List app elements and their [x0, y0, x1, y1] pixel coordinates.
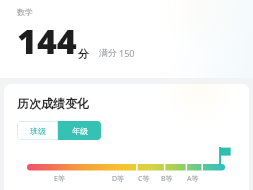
staticText: 历次成绩变化 — [17, 96, 89, 111]
staticText: 年级 — [72, 126, 88, 136]
staticText: 数学 — [17, 7, 33, 17]
staticText: 144 — [17, 18, 77, 64]
staticText: C等 — [138, 174, 150, 184]
button[interactable]: 年级 — [58, 121, 101, 140]
staticText: B等 — [161, 174, 173, 184]
staticText: D等 — [112, 174, 125, 184]
button[interactable]: 班级 — [17, 121, 58, 140]
staticText: E等 — [54, 174, 65, 184]
staticText: A等 — [187, 174, 199, 184]
staticText: 满分 — [99, 47, 117, 58]
staticText: 班级 — [30, 126, 46, 136]
staticText: 分 — [78, 47, 89, 61]
staticText: 150 — [119, 47, 135, 59]
